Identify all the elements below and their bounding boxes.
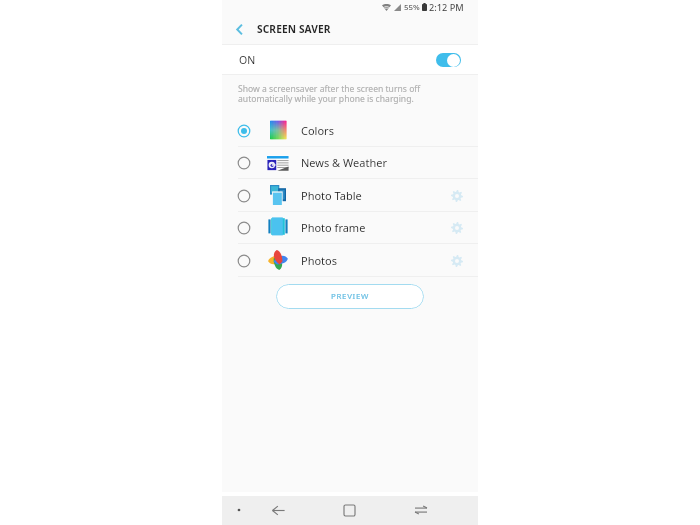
button[interactable]: Photo Table: [222, 179, 478, 212]
button[interactable]: News & Weather: [222, 146, 478, 179]
staticText: SCREEN SAVER: [257, 22, 331, 36]
button[interactable]: Colors: [222, 114, 478, 147]
button[interactable]: Photos: [222, 244, 478, 277]
button[interactable]: Recents: [407, 496, 435, 524]
button[interactable]: PREVIEW: [276, 284, 424, 309]
button[interactable]: Menu: [225, 496, 253, 524]
staticText: Show a screensaver after the screen turn…: [238, 83, 421, 105]
button[interactable]: Back: [264, 496, 292, 524]
staticText: 2:12 PM: [429, 1, 464, 14]
button[interactable]: Settings: [447, 218, 467, 238]
staticText: ON: [239, 53, 256, 67]
button[interactable]: Photo frame: [222, 211, 478, 244]
staticText: Photo Table: [301, 188, 362, 203]
button[interactable]: Home: [335, 496, 363, 524]
staticText: 55%: [404, 2, 420, 13]
button[interactable]: Settings: [447, 251, 467, 271]
staticText: PREVIEW: [331, 291, 370, 302]
button[interactable]: Back: [229, 19, 249, 39]
button[interactable]: ON: [222, 45, 478, 74]
staticText: Photos: [301, 253, 338, 268]
staticText: Photo frame: [301, 220, 366, 235]
button[interactable]: Settings: [447, 186, 467, 206]
staticText: News & Weather: [301, 155, 387, 170]
staticText: Colors: [301, 123, 334, 138]
